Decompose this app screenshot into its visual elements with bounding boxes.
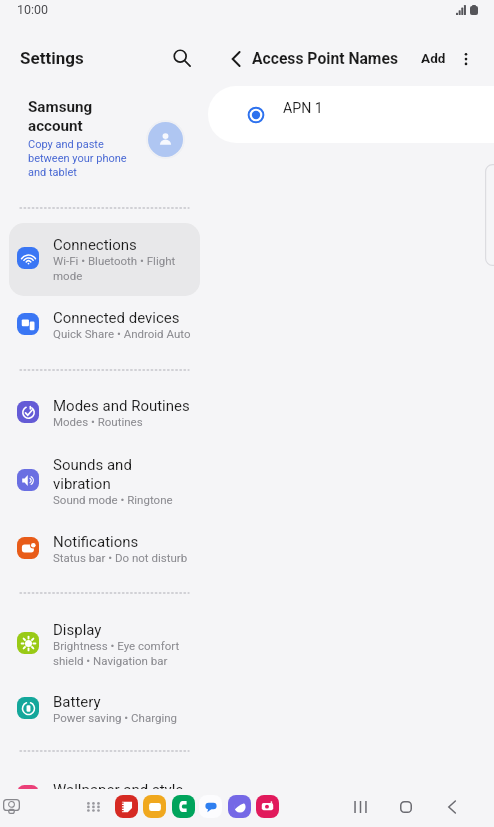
staticText: Notifications: [53, 533, 139, 551]
button[interactable]: [9, 223, 200, 296]
button[interactable]: My Files: [143, 795, 166, 818]
staticText: Status bar • Do not disturb: [53, 551, 188, 564]
staticText: Connected devices: [53, 309, 180, 327]
staticText: Modes • Routines: [53, 415, 143, 428]
staticText: Modes and Routines: [53, 397, 190, 415]
staticText: Display: [53, 621, 102, 639]
button[interactable]: Messages: [199, 795, 222, 818]
staticText: APN 1: [283, 100, 323, 117]
button[interactable]: Samsung account: [0, 96, 205, 184]
button[interactable]: Add: [417, 46, 450, 70]
staticText: Connections: [53, 236, 137, 254]
button[interactable]: More options: [454, 47, 478, 71]
button[interactable]: APN 1: [208, 86, 494, 143]
button[interactable]: Home: [394, 795, 418, 819]
staticText: Power saving • Charging: [53, 711, 178, 724]
button[interactable]: Back: [224, 47, 248, 71]
staticText: Samsung account: [28, 98, 93, 135]
button[interactable]: Search: [166, 42, 198, 74]
staticText: Add: [421, 50, 446, 66]
button[interactable]: Phone: [172, 795, 195, 818]
staticText: Quick Share • Android Auto: [53, 327, 191, 340]
button[interactable]: Recent apps: [348, 795, 372, 819]
button[interactable]: Internet: [228, 795, 251, 818]
button[interactable]: Camera: [256, 795, 279, 818]
staticText: Access Point Names: [252, 49, 398, 67]
staticText: Wi-Fi • Bluetooth • Flight mode: [53, 254, 176, 283]
button[interactable]: Back: [440, 795, 464, 819]
staticText: Sounds and vibration: [53, 456, 132, 493]
staticText: Wallpaper and style: [53, 781, 184, 799]
button[interactable]: All apps: [82, 796, 105, 819]
staticText: Brightness • Eye comfort shield • Naviga…: [53, 639, 180, 668]
staticText: Battery: [53, 693, 101, 711]
staticText: Wallpaper • Themes: [53, 799, 155, 812]
staticText: Copy and paste between your phone and ta…: [28, 138, 127, 179]
button[interactable]: Edge panel: [0, 795, 23, 818]
button[interactable]: Samsung Notes: [115, 795, 138, 818]
staticText: 10:00: [17, 2, 49, 17]
staticText: Sound mode • Ringtone: [53, 493, 173, 506]
staticText: Settings: [20, 48, 84, 68]
